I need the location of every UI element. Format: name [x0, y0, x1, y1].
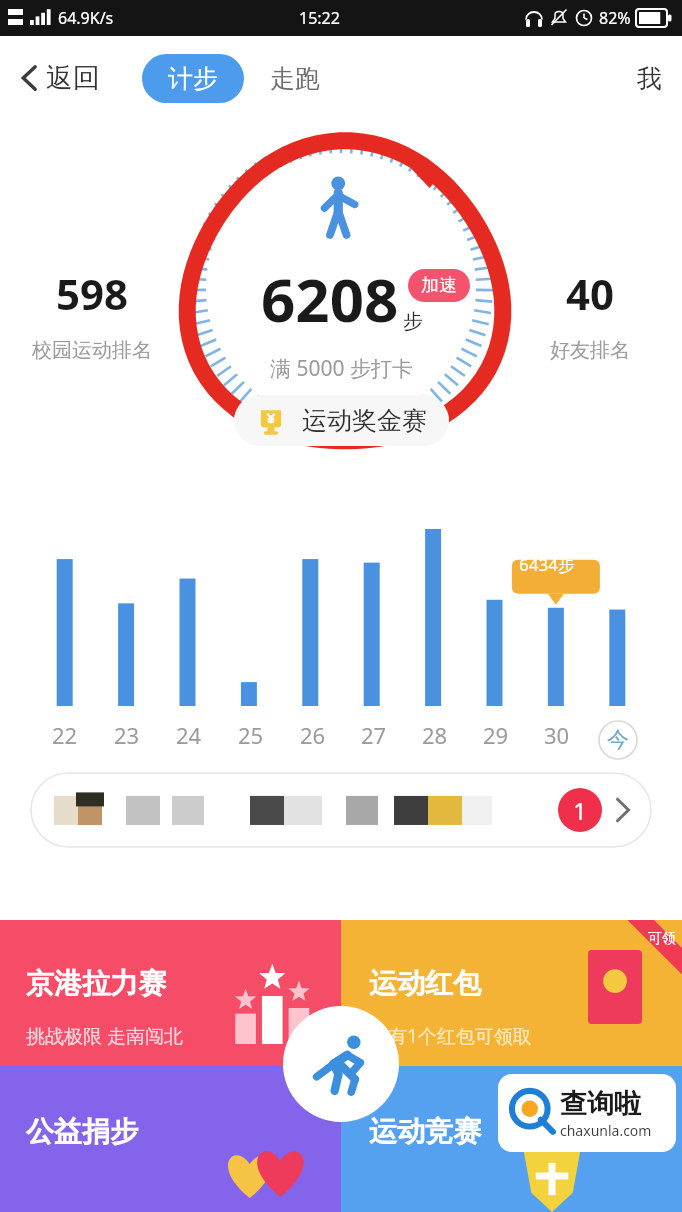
staticText: 好友排名: [550, 338, 630, 363]
staticText: 满 5000 步打卡: [270, 354, 413, 383]
staticText: 6434步: [519, 553, 575, 576]
button[interactable]: 公益捐步: [0, 1066, 341, 1212]
button[interactable]: 返回: [14, 55, 104, 101]
staticText: 26: [300, 720, 326, 750]
button[interactable]: Start running: [283, 1006, 399, 1122]
staticText: 可领: [648, 930, 676, 948]
staticText: 1: [573, 794, 587, 827]
staticText: 计步: [168, 63, 218, 94]
staticText: 30: [544, 720, 570, 750]
staticText: 24: [176, 720, 202, 750]
button[interactable]: 计步: [142, 54, 244, 103]
staticText: 64.9K/s: [58, 7, 114, 29]
staticText: 运动奖金赛: [302, 405, 427, 436]
button[interactable]: 我: [631, 54, 668, 103]
staticText: 校园运动排名: [32, 338, 152, 363]
button[interactable]: 1: [30, 772, 652, 848]
staticText: 今: [607, 726, 629, 754]
staticText: 82%: [599, 7, 631, 29]
button[interactable]: 598: [12, 265, 172, 363]
staticText: 加速: [421, 274, 457, 297]
staticText: 步: [403, 309, 423, 334]
button[interactable]: 运动奖金赛: [234, 395, 449, 446]
staticText: 运动红包: [369, 966, 481, 1001]
staticText: 公益捐步: [26, 1114, 138, 1149]
button[interactable]: 40: [510, 265, 670, 363]
staticText: 22: [52, 720, 78, 750]
staticText: 15:22: [299, 7, 340, 29]
staticText: 27: [361, 720, 387, 750]
staticText: 查询啦: [560, 1087, 641, 1121]
button[interactable]: 走跑: [262, 54, 328, 103]
staticText: 23: [114, 720, 140, 750]
button[interactable]: 运动红包: [341, 920, 682, 1066]
staticText: 我: [637, 63, 662, 94]
staticText: 你有1个红包可领取: [369, 1023, 532, 1049]
other: More: [612, 792, 634, 828]
staticText: 6208: [261, 258, 399, 340]
button[interactable]: 今: [596, 720, 640, 760]
button[interactable]: 加速: [408, 269, 470, 302]
staticText: 京港拉力赛: [26, 966, 166, 1001]
staticText: 25: [238, 720, 264, 750]
staticText: chaxunla.com: [560, 1121, 652, 1140]
staticText: 返回: [46, 61, 100, 95]
staticText: 走跑: [270, 63, 320, 94]
button[interactable]: 京港拉力赛: [0, 920, 341, 1066]
staticText: 40: [566, 265, 615, 322]
staticText: 28: [422, 720, 448, 750]
staticText: 29: [483, 720, 509, 750]
staticText: 运动竞赛: [369, 1114, 481, 1149]
button[interactable]: 运动竞赛: [341, 1066, 682, 1212]
staticText: 598: [56, 265, 129, 322]
staticText: 挑战极限 走南闯北: [26, 1023, 183, 1049]
